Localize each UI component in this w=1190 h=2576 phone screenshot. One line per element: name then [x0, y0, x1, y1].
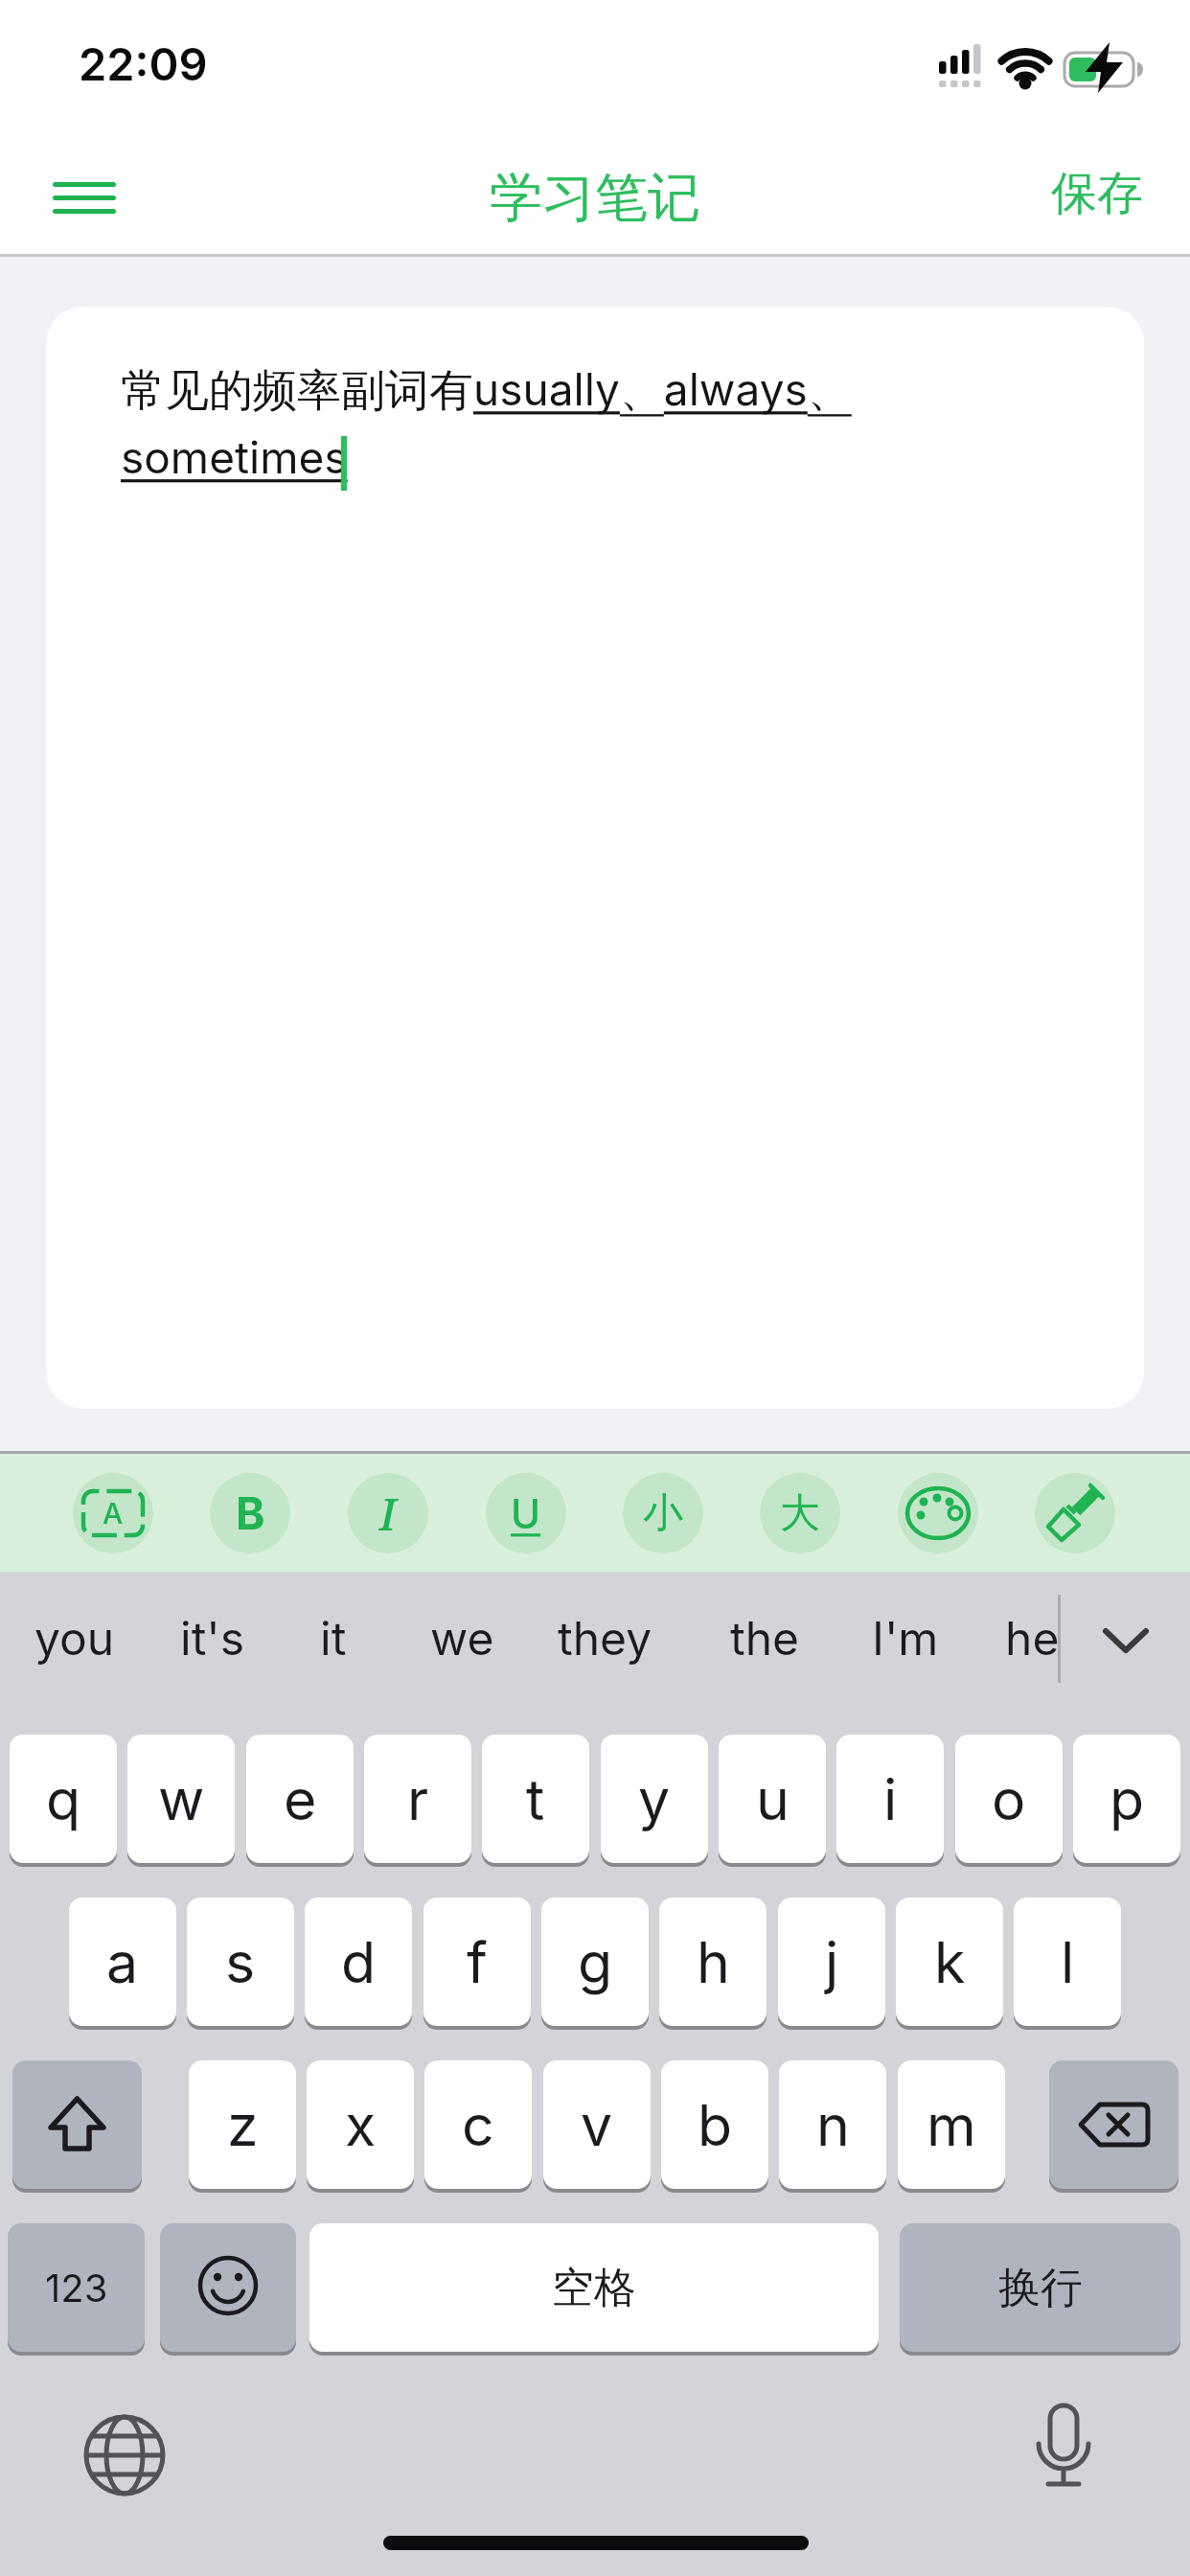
button[interactable]: s [187, 1897, 294, 2026]
button[interactable]: the [730, 1610, 800, 1666]
button[interactable]: 换行 [900, 2223, 1180, 2352]
button[interactable]: l [1014, 1897, 1121, 2026]
button[interactable] [1014, 2396, 1113, 2495]
button[interactable]: q [10, 1735, 117, 1863]
button[interactable]: u [719, 1735, 826, 1863]
button[interactable] [160, 2223, 296, 2352]
button[interactable]: 小 [623, 1473, 703, 1553]
staticText: v [581, 2091, 613, 2159]
button[interactable]: 保存 [1040, 161, 1155, 226]
button[interactable]: B [210, 1473, 290, 1553]
button[interactable]: v [543, 2060, 651, 2189]
staticText: we [430, 1610, 494, 1666]
staticText: p [1110, 1765, 1145, 1833]
button[interactable]: 123 [8, 2223, 145, 2352]
button[interactable]: we [430, 1610, 494, 1666]
button[interactable]: r [364, 1735, 471, 1863]
staticText: it's [180, 1610, 245, 1666]
button[interactable]: i [836, 1735, 944, 1863]
button[interactable]: U [486, 1473, 566, 1553]
staticText: I'm [872, 1610, 939, 1666]
button[interactable]: you [34, 1610, 115, 1666]
button[interactable]: he [1005, 1610, 1060, 1666]
staticText: I [379, 1483, 397, 1544]
button[interactable] [898, 1473, 978, 1553]
button[interactable]: they [558, 1610, 652, 1666]
button[interactable]: a [69, 1897, 176, 2026]
button[interactable]: y [601, 1735, 708, 1863]
button[interactable]: m [898, 2060, 1005, 2189]
staticText: 123 [45, 2265, 108, 2311]
staticText: c [462, 2091, 494, 2159]
button[interactable]: c [424, 2060, 532, 2189]
button[interactable]: A [73, 1473, 153, 1553]
button[interactable] [42, 165, 126, 224]
button[interactable]: d [305, 1897, 412, 2026]
staticText: 空格 [552, 2262, 636, 2314]
button[interactable]: I'm [872, 1610, 939, 1666]
staticText: the [730, 1610, 800, 1666]
staticText: U [511, 1489, 541, 1538]
staticText: he [1005, 1610, 1060, 1666]
staticText: t [526, 1765, 545, 1833]
staticText: 22:09 [79, 36, 208, 91]
button[interactable]: x [307, 2060, 414, 2189]
staticText: they [558, 1610, 652, 1666]
staticText: 学习笔记 [490, 165, 700, 224]
button[interactable]: z [189, 2060, 296, 2189]
staticText: it [320, 1610, 347, 1666]
button[interactable]: e [246, 1735, 354, 1863]
button[interactable]: g [541, 1897, 649, 2026]
button[interactable]: b [661, 2060, 768, 2189]
button[interactable]: h [659, 1897, 767, 2026]
staticText: m [927, 2091, 976, 2159]
staticText: f [467, 1928, 488, 1996]
button[interactable]: it [320, 1610, 347, 1666]
button[interactable]: j [778, 1897, 885, 2026]
staticText: y [638, 1765, 671, 1833]
button[interactable]: k [896, 1897, 1003, 2026]
staticText: 常见的频率副词有usually、always、 sometimes [121, 362, 1079, 484]
button[interactable] [75, 2405, 174, 2505]
button[interactable] [1035, 1473, 1115, 1553]
staticText: 换行 [998, 2262, 1083, 2314]
staticText: n [816, 2091, 850, 2159]
staticText: x [345, 2091, 377, 2159]
staticText: s [225, 1928, 256, 1996]
staticText: d [341, 1928, 377, 1996]
button[interactable]: 空格 [309, 2223, 879, 2352]
staticText: q [46, 1765, 81, 1833]
staticText: A [103, 1496, 124, 1530]
staticText: j [825, 1928, 839, 1996]
staticText: h [697, 1928, 730, 1996]
staticText: 大 [780, 1488, 820, 1539]
staticText: w [158, 1765, 205, 1833]
staticText: r [407, 1765, 429, 1833]
staticText: i [883, 1765, 898, 1833]
button[interactable]: I [348, 1473, 428, 1553]
staticText: o [992, 1765, 1026, 1833]
button[interactable]: t [482, 1735, 589, 1863]
staticText: 小 [643, 1488, 683, 1539]
staticText: k [934, 1928, 966, 1996]
button[interactable]: n [779, 2060, 886, 2189]
button[interactable]: p [1073, 1735, 1180, 1863]
staticText: e [284, 1765, 317, 1833]
staticText: B [236, 1486, 265, 1540]
staticText: u [756, 1765, 790, 1833]
button[interactable] [1049, 2060, 1179, 2189]
button[interactable]: w [127, 1735, 235, 1863]
staticText: g [578, 1928, 613, 1996]
staticText: b [698, 2091, 733, 2159]
button[interactable]: f [423, 1897, 531, 2026]
staticText: a [106, 1928, 139, 1996]
button[interactable] [12, 2060, 142, 2189]
button[interactable]: o [955, 1735, 1063, 1863]
staticText: z [227, 2091, 259, 2159]
staticText: you [34, 1610, 115, 1666]
staticText: l [1061, 1928, 1075, 1996]
button[interactable]: 大 [760, 1473, 840, 1553]
staticText: 保存 [1051, 165, 1143, 222]
button[interactable]: it's [180, 1610, 245, 1666]
